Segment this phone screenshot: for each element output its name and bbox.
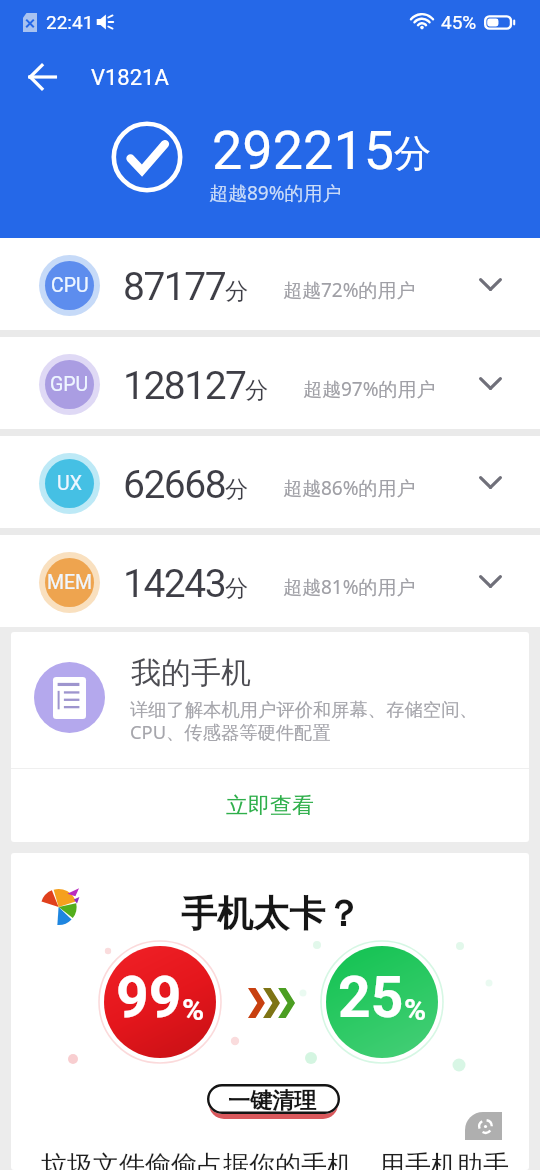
staticText: MEM xyxy=(47,571,93,594)
staticText: 99 xyxy=(116,964,182,1031)
staticText: 立即查看 xyxy=(226,792,314,820)
staticText: 手机太卡？ xyxy=(181,891,361,936)
staticText: 超越89%的用户 xyxy=(209,180,342,206)
staticText: GPU xyxy=(50,373,89,396)
staticText: 超越72%的用户 xyxy=(283,277,416,303)
staticText: 超越81%的用户 xyxy=(283,574,416,600)
staticText: 我的手机 xyxy=(131,654,251,692)
staticText: 一键清理 xyxy=(228,1087,316,1115)
button[interactable]: GPU xyxy=(0,337,540,429)
staticText: 垃圾文件偷偷占据你的手机，用手机助手 xyxy=(41,1149,509,1170)
staticText: 292215 xyxy=(212,119,395,182)
staticText: 14243 xyxy=(123,561,226,607)
button[interactable]: Expand GPU xyxy=(464,357,516,409)
button[interactable]: Back xyxy=(16,51,68,103)
staticText: 87177 xyxy=(123,264,226,310)
staticText: CPU xyxy=(51,274,89,297)
staticText: % xyxy=(182,992,205,1027)
staticText: 22:41 xyxy=(46,11,94,33)
staticText: 128127 xyxy=(123,363,246,409)
staticText: V1821A xyxy=(91,65,169,91)
other: Ad xyxy=(465,1112,502,1140)
staticText: 超越86%的用户 xyxy=(283,475,416,501)
staticText: 25 xyxy=(338,964,404,1031)
button[interactable]: Expand MEM xyxy=(464,555,516,607)
staticText: 62668 xyxy=(123,462,226,508)
button[interactable]: CPU xyxy=(0,238,540,330)
button[interactable]: 手机太卡？ xyxy=(11,853,529,1170)
button[interactable]: MEM xyxy=(0,535,540,627)
staticText: 分 xyxy=(225,574,248,603)
button[interactable]: 我的手机 xyxy=(11,632,529,768)
button[interactable]: 一键清理 xyxy=(207,1084,340,1118)
button[interactable]: Expand UX xyxy=(464,456,516,508)
staticText: 45% xyxy=(441,11,477,33)
staticText: UX xyxy=(57,472,82,495)
button[interactable]: 立即查看 xyxy=(11,769,529,842)
staticText: % xyxy=(404,992,427,1027)
button[interactable]: Expand CPU xyxy=(464,258,516,310)
staticText: 分 xyxy=(225,475,248,504)
staticText: 详细了解本机用户评价和屏幕、存储空间、 CPU、传感器等硬件配置 xyxy=(130,698,478,744)
staticText: 分 xyxy=(245,376,268,405)
staticText: 分 xyxy=(394,130,431,177)
button[interactable]: UX xyxy=(0,436,540,528)
staticText: 分 xyxy=(225,277,248,306)
staticText: 超越97%的用户 xyxy=(303,376,436,402)
